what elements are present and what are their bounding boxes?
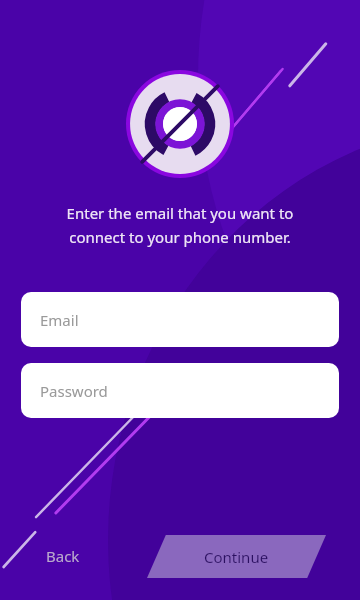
button[interactable]: Back <box>40 541 86 571</box>
button[interactable]: Email <box>21 292 339 347</box>
staticText: Password <box>40 381 108 401</box>
staticText: Email <box>40 310 79 330</box>
button[interactable]: Continue <box>147 535 326 578</box>
button[interactable]: Password <box>21 363 339 418</box>
staticText: Enter the email that you want to connect… <box>30 203 330 247</box>
staticText: Continue <box>204 547 269 567</box>
staticText: Back <box>46 546 80 566</box>
